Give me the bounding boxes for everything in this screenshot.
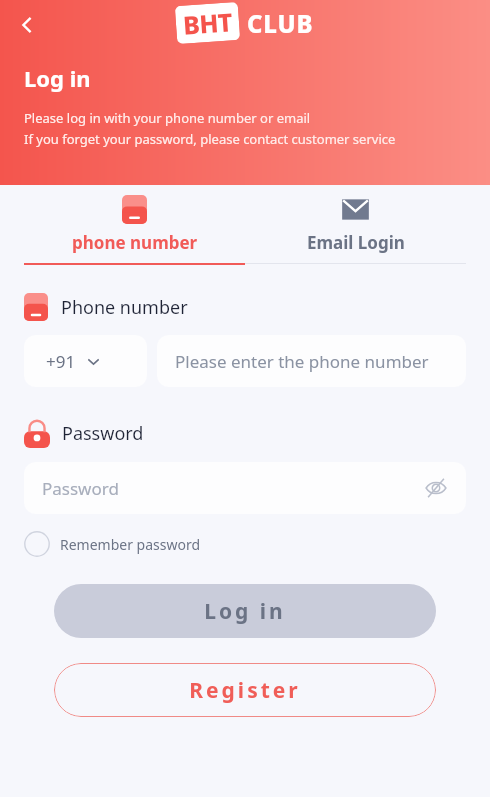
button[interactable]: phone number (24, 195, 245, 265)
staticText: Register (189, 676, 301, 705)
staticText: Log in (204, 597, 286, 626)
staticText: If you forget your password, please cont… (24, 130, 396, 148)
button[interactable]: Please enter the phone number (157, 335, 466, 387)
staticText: Password (42, 477, 422, 500)
staticText: Remember password (60, 535, 201, 554)
button[interactable]: +91 (24, 335, 147, 387)
staticText: Password (62, 421, 144, 446)
button[interactable]: Email Login (245, 195, 466, 264)
staticText: phone number (72, 231, 198, 254)
staticText: Email Login (307, 231, 405, 254)
staticText: BHT (182, 4, 233, 42)
button[interactable]: Password (24, 462, 466, 514)
staticText: Please log in with your phone number or … (24, 109, 311, 127)
button[interactable]: Register (54, 663, 436, 717)
button[interactable]: Back (6, 4, 48, 46)
button[interactable]: Log in (54, 584, 436, 638)
staticText: Phone number (61, 295, 188, 320)
staticText: +91 (46, 350, 76, 373)
button[interactable]: Show password (422, 474, 450, 502)
staticText: Please enter the phone number (175, 350, 429, 373)
staticText: CLUB (247, 7, 314, 40)
button[interactable]: Remember password (24, 531, 201, 557)
staticText: Log in (24, 63, 91, 93)
